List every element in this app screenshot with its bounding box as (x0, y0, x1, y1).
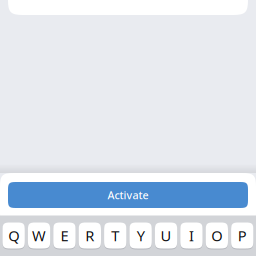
button[interactable]: E (53, 222, 76, 249)
button[interactable]: U (155, 222, 177, 249)
staticText: Q (8, 226, 19, 245)
button[interactable]: W (28, 222, 50, 249)
staticText: E (60, 226, 68, 245)
staticText: Y (137, 226, 145, 245)
staticText: R (85, 226, 94, 245)
staticText: O (211, 226, 222, 245)
button[interactable]: P (231, 222, 253, 249)
staticText: T (111, 226, 119, 245)
button[interactable]: O (206, 222, 228, 249)
button[interactable]: I (180, 222, 203, 249)
button[interactable]: Activate (8, 182, 248, 208)
staticText: Activate (107, 188, 148, 202)
button[interactable]: Y (129, 222, 152, 249)
button[interactable]: T (104, 222, 126, 249)
staticText: P (238, 226, 247, 245)
staticText: I (189, 226, 194, 245)
staticText: W (32, 226, 46, 245)
button[interactable]: Q (2, 222, 25, 249)
button[interactable]: R (79, 222, 101, 249)
staticText: U (161, 226, 172, 245)
